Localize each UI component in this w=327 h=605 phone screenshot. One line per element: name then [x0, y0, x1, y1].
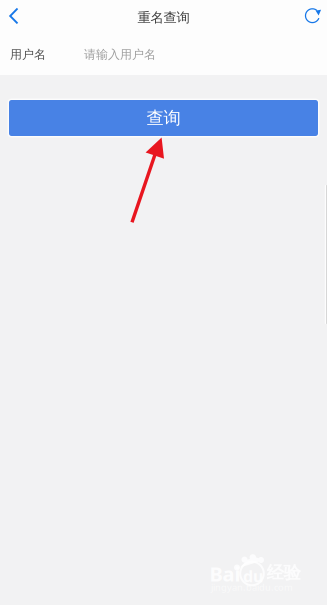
button[interactable]: 用户名 — [0, 32, 327, 75]
staticText: 重名查询 — [137, 9, 189, 26]
staticText: 用户名 — [10, 47, 46, 62]
button[interactable]: Back — [0, 0, 33, 32]
button[interactable]: Refresh — [291, 0, 327, 32]
staticText: 经验 — [266, 562, 300, 583]
staticText: Bai — [209, 560, 240, 587]
staticText: du — [243, 565, 263, 587]
staticText: 请输入用户名 — [84, 47, 156, 62]
button[interactable]: 查询 — [8, 99, 319, 137]
staticText: 查询 — [146, 107, 180, 129]
